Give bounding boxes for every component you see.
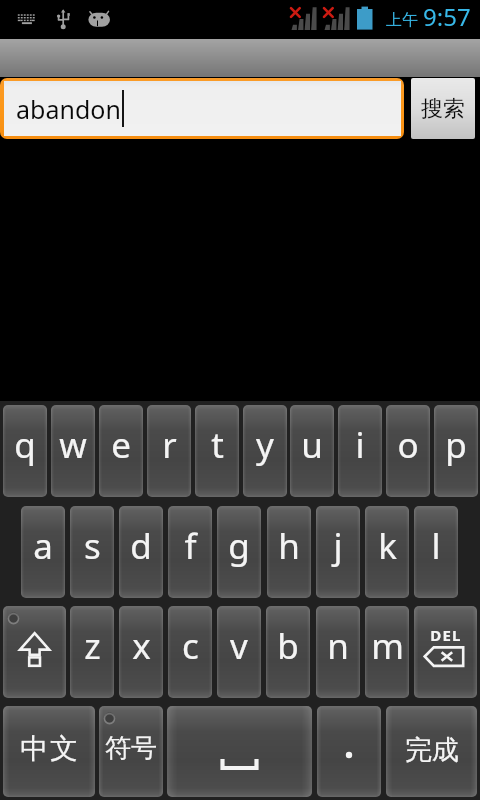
button[interactable]: z bbox=[70, 606, 114, 698]
button[interactable]: 完成 bbox=[386, 706, 477, 797]
staticText: b bbox=[277, 622, 299, 670]
staticText: n bbox=[327, 622, 349, 670]
staticText: 9:57 bbox=[423, 0, 471, 33]
staticText: j bbox=[333, 522, 343, 570]
button[interactable]: j bbox=[316, 506, 360, 598]
button[interactable]: v bbox=[217, 606, 261, 698]
button[interactable]: b bbox=[266, 606, 310, 698]
button[interactable]: i bbox=[338, 405, 382, 497]
staticText: p bbox=[445, 421, 467, 469]
button[interactable]: y bbox=[243, 405, 287, 497]
staticText: h bbox=[278, 522, 300, 570]
button[interactable]: 中文 bbox=[3, 706, 95, 797]
staticText: 上午 bbox=[386, 10, 418, 30]
button[interactable]: t bbox=[195, 405, 239, 497]
button[interactable]: u bbox=[290, 405, 334, 497]
staticText: u bbox=[301, 421, 323, 469]
staticText: e bbox=[111, 421, 131, 469]
staticText: DEL bbox=[430, 625, 462, 645]
staticText: a bbox=[33, 522, 53, 570]
staticText: o bbox=[397, 421, 419, 469]
button[interactable]: Shift bbox=[3, 606, 66, 698]
button[interactable]: Space bbox=[167, 706, 312, 797]
button[interactable]: p bbox=[434, 405, 478, 497]
button[interactable]: l bbox=[414, 506, 458, 598]
staticText: g bbox=[228, 522, 250, 570]
staticText: f bbox=[184, 522, 197, 570]
button[interactable]: n bbox=[316, 606, 360, 698]
staticText: x bbox=[132, 622, 151, 670]
button[interactable]: c bbox=[168, 606, 212, 698]
button[interactable]: d bbox=[119, 506, 163, 598]
staticText: i bbox=[355, 421, 365, 469]
staticText: t bbox=[211, 421, 224, 469]
staticText: v bbox=[230, 622, 248, 670]
button[interactable]: 符号 bbox=[99, 706, 163, 797]
staticText: z bbox=[84, 622, 101, 670]
staticText: m bbox=[371, 622, 404, 670]
staticText: r bbox=[162, 421, 177, 469]
staticText: w bbox=[59, 421, 87, 469]
staticText: q bbox=[14, 421, 36, 469]
staticText: 中文 bbox=[19, 731, 79, 766]
button[interactable]: a bbox=[21, 506, 65, 598]
button[interactable]: abandon bbox=[4, 81, 401, 136]
button[interactable]: s bbox=[70, 506, 114, 598]
staticText: abandon bbox=[16, 92, 121, 126]
button[interactable]: w bbox=[51, 405, 95, 497]
button[interactable]: g bbox=[217, 506, 261, 598]
staticText: s bbox=[84, 522, 101, 570]
button[interactable]: e bbox=[99, 405, 143, 497]
staticText: d bbox=[130, 522, 152, 570]
staticText: 符号 bbox=[105, 732, 157, 765]
button[interactable]: 搜索 bbox=[411, 78, 475, 139]
staticText: k bbox=[378, 522, 397, 570]
button[interactable]: k bbox=[365, 506, 409, 598]
button[interactable]: Delete bbox=[414, 606, 477, 698]
button[interactable]: Period bbox=[317, 706, 381, 797]
staticText: 搜索 bbox=[421, 95, 465, 123]
button[interactable]: m bbox=[365, 606, 409, 698]
staticText: 完成 bbox=[405, 733, 459, 767]
button[interactable]: o bbox=[386, 405, 430, 497]
button[interactable]: h bbox=[267, 506, 311, 598]
staticText: l bbox=[431, 522, 441, 570]
staticText: y bbox=[256, 421, 274, 469]
button[interactable]: r bbox=[147, 405, 191, 497]
button[interactable]: x bbox=[119, 606, 163, 698]
button[interactable]: f bbox=[168, 506, 212, 598]
button[interactable]: q bbox=[3, 405, 47, 497]
staticText: c bbox=[182, 622, 199, 670]
